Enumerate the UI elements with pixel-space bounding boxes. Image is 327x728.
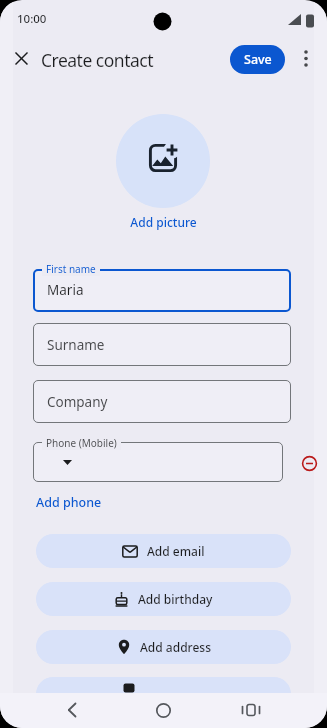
button[interactable] (33, 269, 291, 312)
button[interactable] (299, 453, 319, 473)
button[interactable]: Add picture (0, 214, 327, 230)
staticText: Add email (147, 543, 205, 559)
button[interactable] (295, 48, 316, 69)
button[interactable]: Add address (36, 630, 291, 664)
staticText: Surname (47, 336, 105, 354)
staticText: First name (46, 262, 96, 276)
button[interactable]: Company (33, 380, 291, 423)
button[interactable]: Add email (36, 534, 291, 568)
staticText: Add address (140, 639, 211, 655)
button[interactable] (58, 693, 86, 727)
button[interactable] (11, 48, 32, 69)
button[interactable] (36, 677, 291, 711)
staticText: Add birthday (138, 591, 213, 607)
staticText: Save (244, 51, 272, 68)
button[interactable] (116, 114, 210, 208)
button[interactable]: Surname (33, 323, 291, 366)
button[interactable]: Save (230, 45, 285, 74)
button[interactable]: Add phone (36, 494, 102, 511)
staticText: Company (47, 393, 108, 411)
button[interactable] (33, 442, 283, 482)
staticText: 10:00 (17, 11, 47, 27)
button[interactable]: Add birthday (36, 582, 291, 616)
staticText: Create contact (41, 48, 154, 72)
button[interactable] (149, 693, 177, 727)
staticText: Phone (Mobile) (46, 436, 117, 450)
staticText: Maria (47, 281, 84, 299)
button[interactable] (237, 693, 265, 727)
